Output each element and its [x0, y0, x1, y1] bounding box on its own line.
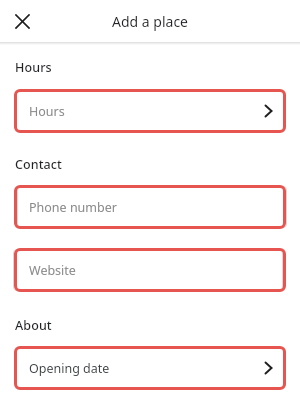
staticText: Contact: [15, 156, 62, 173]
button[interactable]: Phone number: [13, 184, 287, 230]
staticText: Opening date: [29, 360, 110, 377]
staticText: About: [15, 317, 52, 334]
staticText: Add a place: [112, 12, 188, 31]
button[interactable]: Website: [13, 247, 287, 293]
staticText: Phone number: [29, 199, 117, 216]
staticText: Website: [29, 262, 76, 279]
button[interactable]: Opening date: [13, 345, 287, 391]
staticText: Hours: [15, 59, 52, 76]
staticText: Hours: [29, 103, 65, 120]
button[interactable]: Hours: [13, 88, 287, 134]
button[interactable]: Close: [9, 8, 36, 35]
